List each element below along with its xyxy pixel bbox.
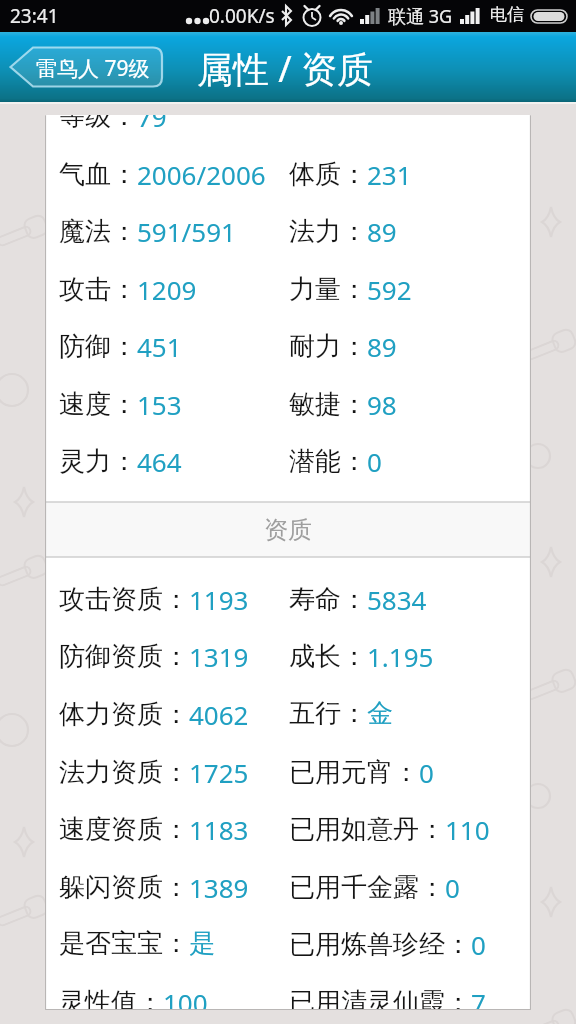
staticText: 是 [189,927,215,960]
staticText: 0 [445,870,460,905]
staticText: 速度： [59,388,137,421]
staticText: 防御： [59,330,137,363]
staticText: 7 [471,985,486,1009]
staticText: 1319 [189,639,249,674]
staticText: 23:41 [10,3,59,29]
staticText: 耐力： [289,330,367,363]
staticText: 攻击： [59,273,137,306]
staticText: 敏捷： [289,388,367,421]
staticText: 属性 / 资质 [197,44,374,93]
staticText: 灵性值： [59,986,163,1009]
staticText: 已用千金露： [289,871,445,904]
staticText: 451 [137,329,182,364]
staticText: 5834 [367,582,427,617]
staticText: 89 [367,329,397,364]
staticText: 法力资质： [59,756,189,789]
staticText: 1725 [189,755,249,790]
staticText: 魔法： [59,215,137,248]
staticText: 体质： [289,158,367,191]
staticText: 联通 3G [388,4,453,29]
staticText: 0 [471,927,486,962]
staticText: 寿命： [289,583,367,616]
staticText: 金 [367,697,393,730]
staticText: 体力资质： [59,698,189,731]
staticText: 速度资质： [59,813,189,846]
staticText: 气血： [59,158,137,191]
staticText: 0.00K/s [209,3,275,29]
staticText: 98 [367,387,397,422]
staticText: 等级： [59,115,137,133]
staticText: 灵力： [59,445,137,478]
staticText: 0 [367,444,382,479]
staticText: 力量： [289,273,367,306]
staticText: 1193 [189,582,249,617]
staticText: 1209 [137,272,197,307]
staticText: 已用如意丹： [289,813,445,846]
staticText: 0 [419,755,434,790]
staticText: 防御资质： [59,640,189,673]
staticText: 资质 [45,515,531,557]
staticText: 成长： [289,640,367,673]
staticText: 464 [137,444,182,479]
staticText: 1183 [189,812,249,847]
staticText: 电信 [490,4,524,25]
staticText: 躲闪资质： [59,871,189,904]
staticText: 攻击资质： [59,583,189,616]
staticText: 1.195 [367,639,434,674]
staticText: 2006/2006 [137,157,266,192]
staticText: 法力： [289,215,367,248]
staticText: 231 [367,157,412,192]
staticText: 110 [445,812,490,847]
staticText: 已用炼兽珍经： [289,928,471,961]
staticText: 100 [163,985,208,1009]
staticText: 1389 [189,870,249,905]
staticText: 潜能： [289,445,367,478]
staticText: 89 [367,214,397,249]
staticText: 已用元宵： [289,756,419,789]
button[interactable]: Back [8,43,166,91]
staticText: 591/591 [137,214,236,249]
staticText: 592 [367,272,412,307]
staticText: 已用清灵仙霞： [289,986,471,1009]
staticText: 153 [137,387,182,422]
staticText: 雷鸟人 79级 [36,54,150,83]
staticText: 79 [137,115,167,134]
staticText: 五行： [289,697,367,730]
staticText: 4062 [189,697,249,732]
staticText: 是否宝宝： [59,927,189,960]
